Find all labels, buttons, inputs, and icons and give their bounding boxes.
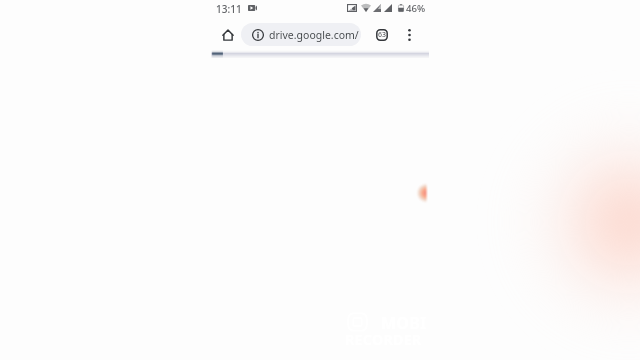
- staticText: 13:11: [216, 2, 242, 16]
- button[interactable]: drive.google.com/: [241, 23, 361, 46]
- button[interactable]: More options: [398, 24, 420, 46]
- button[interactable]: Tabs: [371, 24, 393, 46]
- staticText: 63: [378, 30, 387, 40]
- staticText: drive.google.com/: [269, 28, 359, 42]
- staticText: 46%: [406, 2, 426, 15]
- button[interactable]: Home: [217, 24, 239, 46]
